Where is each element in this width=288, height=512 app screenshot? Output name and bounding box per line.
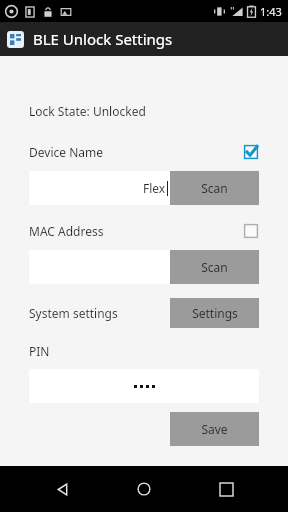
button[interactable]: MAC Address — [29, 221, 259, 241]
staticText: Device Name — [29, 144, 103, 160]
button[interactable]: Device Name — [29, 142, 259, 162]
button[interactable]: Recent apps — [206, 469, 246, 509]
staticText: Scan — [201, 259, 228, 275]
button[interactable] — [29, 369, 259, 403]
staticText: PIN — [29, 343, 50, 359]
button[interactable]: Flex — [29, 171, 170, 205]
other: Disabled checkbox — [243, 223, 259, 239]
staticText: Settings — [192, 305, 238, 321]
staticText: BLE Unlock Settings — [33, 29, 173, 49]
button[interactable]: Scan — [170, 171, 259, 205]
staticText: Lock State: Unlocked — [29, 103, 146, 119]
staticText: Save — [201, 421, 228, 437]
button[interactable]: Settings — [170, 298, 259, 328]
staticText: Scan — [201, 180, 228, 196]
staticText: 1:43 — [260, 4, 282, 19]
staticText: Flex — [143, 180, 166, 196]
button[interactable]: Home — [124, 469, 164, 509]
staticText: MAC Address — [29, 223, 104, 239]
button[interactable]: Back — [42, 469, 82, 509]
staticText: System settings — [29, 305, 118, 321]
button[interactable]: Scan — [170, 250, 259, 284]
button[interactable]: Save — [170, 412, 259, 446]
other: Enabled checkbox — [243, 144, 259, 160]
